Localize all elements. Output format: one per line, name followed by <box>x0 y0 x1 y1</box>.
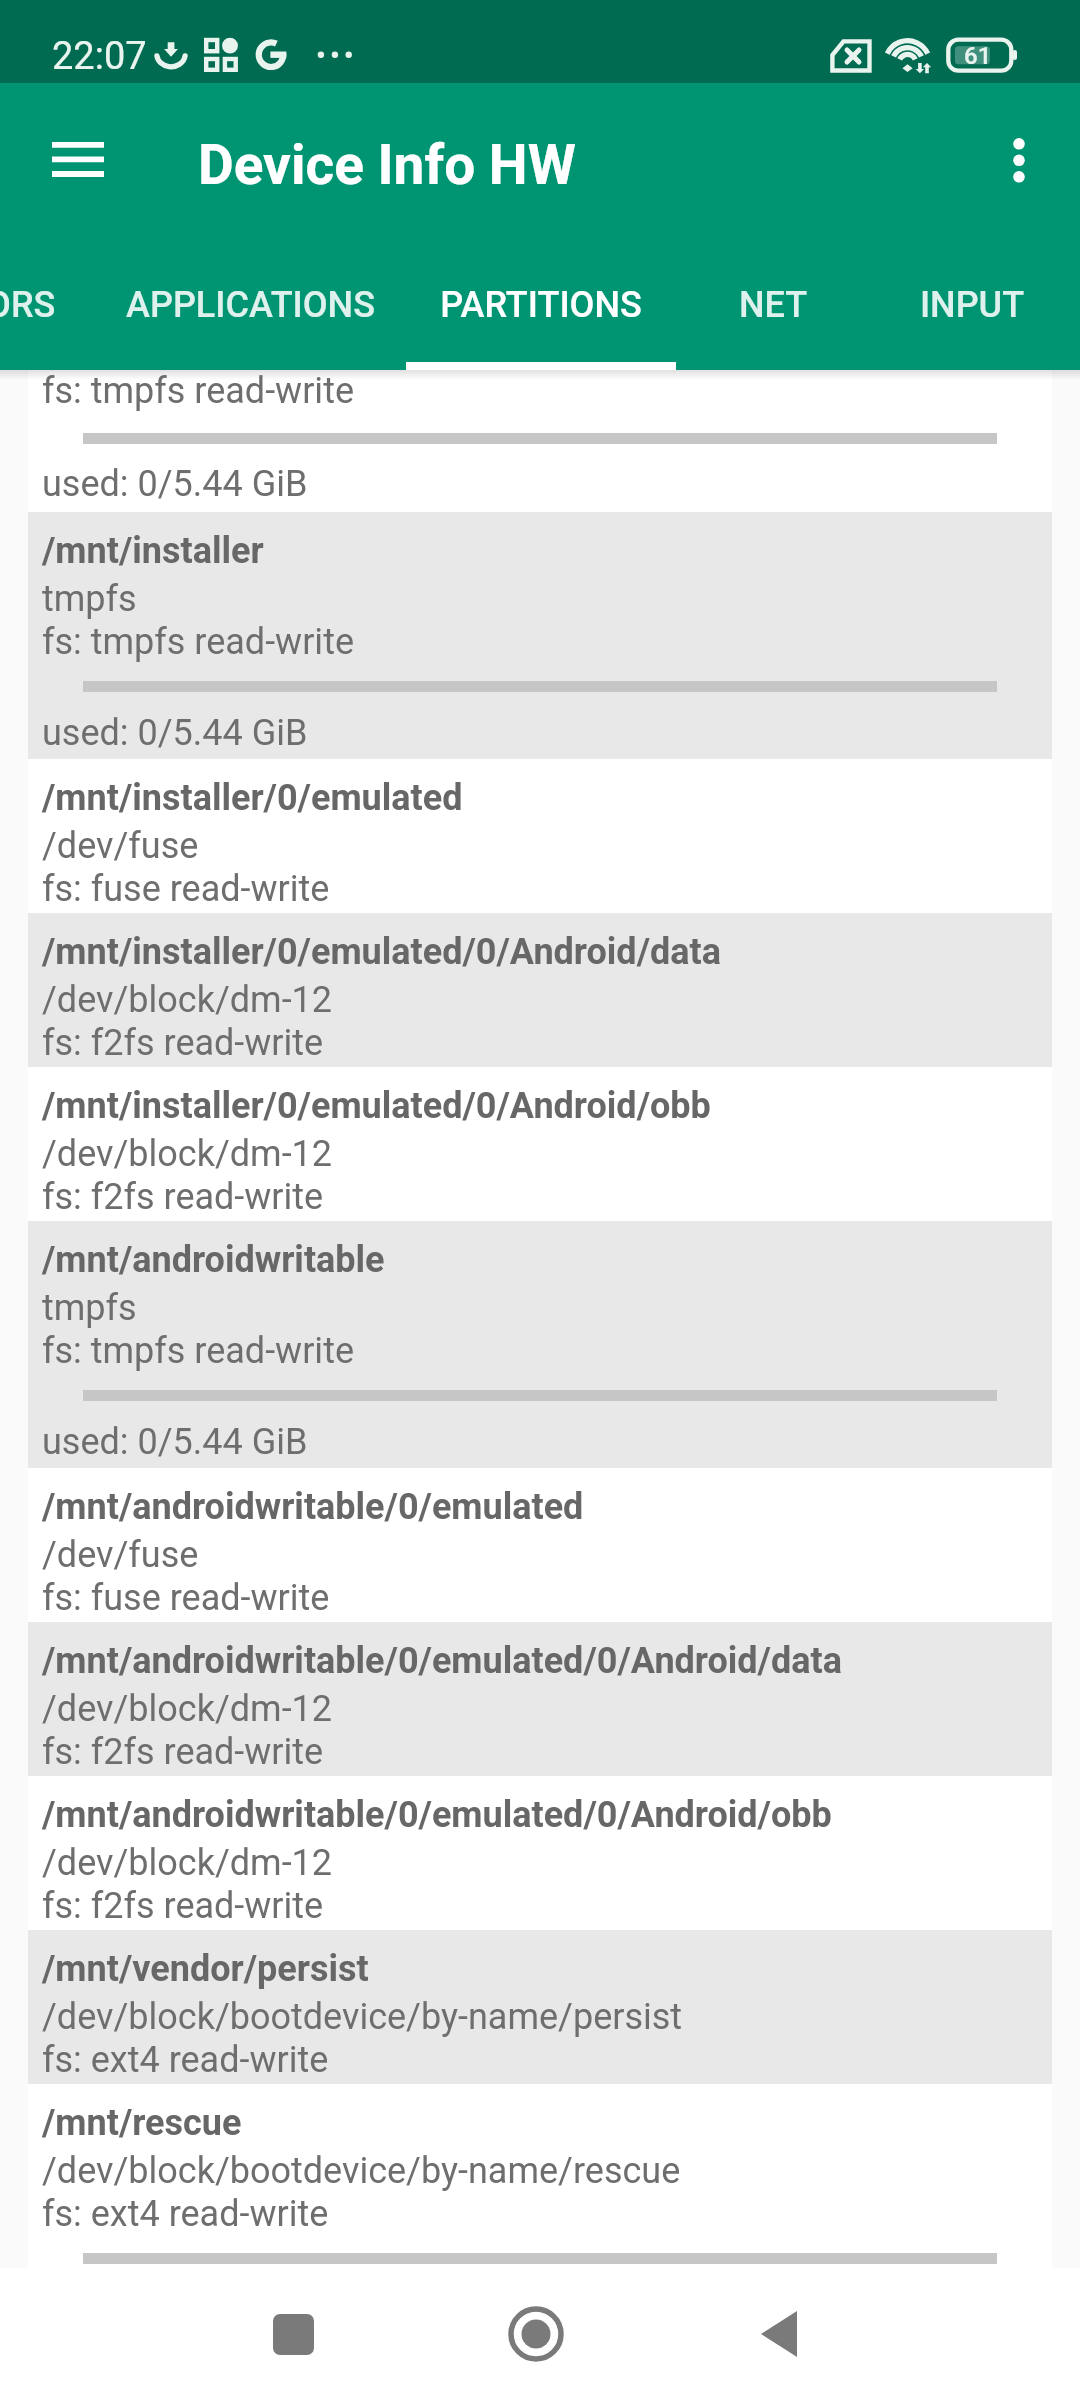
button[interactable]: INPUT <box>872 263 1072 370</box>
staticText: used: 0/5.44 GiB <box>42 1421 308 1463</box>
staticText: PARTITIONS <box>406 284 676 326</box>
button[interactable]: More options <box>956 98 1080 223</box>
staticText: /mnt/rescue <box>42 2102 242 2144</box>
button[interactable]: Back <box>720 2274 840 2394</box>
staticText: 61 <box>964 42 992 70</box>
staticText: APPLICATIONS <box>105 284 396 326</box>
button[interactable] <box>28 1468 1052 1622</box>
staticText: /mnt/installer <box>42 530 264 572</box>
staticText: fs: f2fs read-write <box>42 1885 324 1927</box>
staticText: /mnt/installer/0/emulated/0/Android/data <box>42 931 721 973</box>
button[interactable] <box>28 370 1052 512</box>
staticText: /dev/block/bootdevice/by-name/rescue <box>42 2150 681 2192</box>
staticText: /dev/block/dm-12 <box>42 1842 333 1884</box>
staticText: /dev/block/bootdevice/by-name/persist <box>42 1996 683 2038</box>
button[interactable] <box>28 512 1052 759</box>
staticText: fs: fuse read-write <box>42 1577 330 1619</box>
staticText: /mnt/androidwritable/0/emulated/0/Androi… <box>42 1794 832 1836</box>
staticText: used: 0/5.44 GiB <box>42 712 308 754</box>
staticText: fs: f2fs read-write <box>42 1022 324 1064</box>
staticText: 22:07 <box>52 34 147 79</box>
staticText: SENSORS <box>0 284 111 326</box>
staticText: fs: ext4 read-write <box>42 2039 329 2081</box>
button[interactable] <box>28 759 1052 913</box>
staticText: tmpfs <box>42 578 137 620</box>
staticText: /mnt/vendor/persist <box>42 1948 369 1990</box>
staticText: fs: tmpfs read-write <box>42 370 354 412</box>
staticText: used: 0/5.44 GiB <box>42 463 308 505</box>
button[interactable]: Recent apps <box>233 2274 353 2394</box>
button[interactable] <box>28 1930 1052 2084</box>
button[interactable] <box>28 913 1052 1067</box>
staticText: /mnt/androidwritable/0/emulated <box>42 1486 584 1528</box>
button[interactable]: Home <box>476 2274 596 2394</box>
staticText: /mnt/installer/0/emulated <box>42 777 463 819</box>
button[interactable]: Open navigation drawer <box>15 98 140 223</box>
staticText: Device Info HW <box>198 133 576 197</box>
staticText: /mnt/installer/0/emulated/0/Android/obb <box>42 1085 711 1127</box>
staticText: NET <box>671 284 875 326</box>
button[interactable]: SENSORS <box>0 263 111 370</box>
staticText: fs: tmpfs read-write <box>42 621 354 663</box>
staticText: fs: f2fs read-write <box>42 1176 324 1218</box>
button[interactable] <box>28 2084 1052 2331</box>
staticText: fs: tmpfs read-write <box>42 1330 354 1372</box>
button[interactable] <box>28 1776 1052 1930</box>
staticText: /dev/block/dm-12 <box>42 1133 333 1175</box>
button[interactable]: APPLICATIONS <box>105 263 396 370</box>
staticText: /dev/fuse <box>42 1534 199 1576</box>
staticText: /dev/block/dm-12 <box>42 1688 333 1730</box>
staticText: used: 0/0.95 GiB <box>42 2284 308 2326</box>
staticText: fs: ext4 read-write <box>42 2193 329 2235</box>
staticText: fs: f2fs read-write <box>42 1731 324 1773</box>
staticText: INPUT <box>872 284 1072 326</box>
button[interactable]: PARTITIONS <box>406 263 676 370</box>
button[interactable]: NET <box>671 263 875 370</box>
staticText: /dev/fuse <box>42 825 199 867</box>
staticText: tmpfs <box>42 1287 137 1329</box>
staticText: /mnt/androidwritable <box>42 1239 385 1281</box>
button[interactable] <box>28 1067 1052 1221</box>
staticText: /mnt/androidwritable/0/emulated/0/Androi… <box>42 1640 842 1682</box>
button[interactable] <box>28 1622 1052 1776</box>
staticText: fs: fuse read-write <box>42 868 330 910</box>
button[interactable] <box>28 1221 1052 1468</box>
staticText: /dev/block/dm-12 <box>42 979 333 1021</box>
